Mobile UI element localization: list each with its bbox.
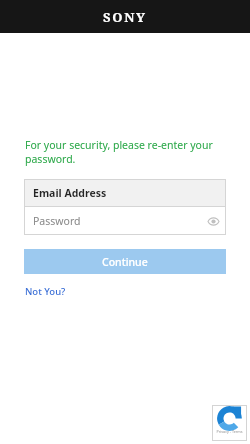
staticText: Continue [102,255,148,269]
staticText: Not You? [25,285,66,298]
button[interactable]: Email Address [24,179,226,206]
staticText: SONY [103,8,147,26]
staticText: Email Address [33,186,107,200]
button[interactable]: Continue [24,249,226,274]
button[interactable]: Show password [200,208,226,234]
button[interactable]: Not You? [25,285,66,298]
button[interactable]: SONY [0,0,250,33]
staticText: Password [33,214,200,228]
staticText: For your security, please re-enter your … [25,138,213,166]
staticText: Privacy - Terms [216,429,243,434]
button[interactable]: Password [24,207,226,235]
button[interactable]: reCAPTCHA Privacy and Terms [212,405,247,441]
